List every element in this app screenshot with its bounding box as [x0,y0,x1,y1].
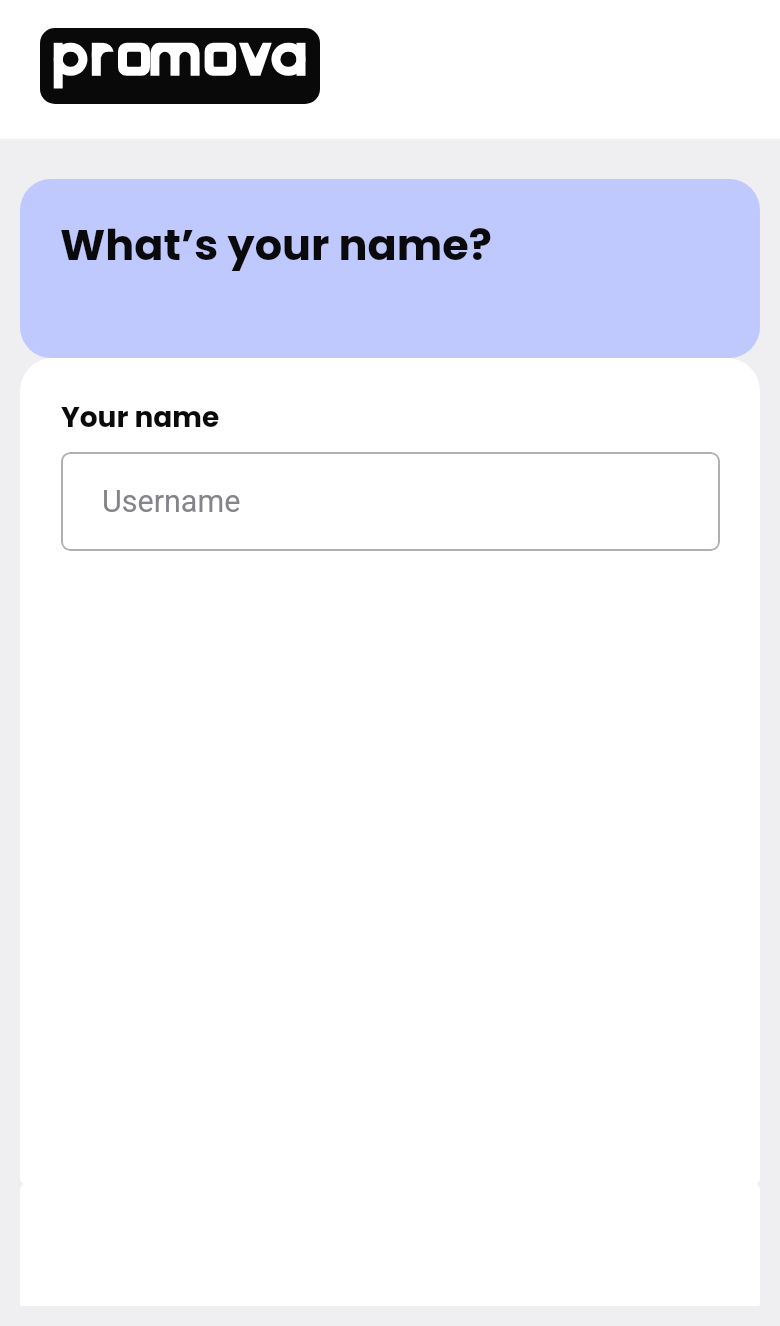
staticText: Username [102,484,241,520]
button[interactable]: Promova [40,28,320,104]
staticText: What’s your name? [60,215,492,275]
staticText: Your name [61,398,220,437]
button[interactable]: Your name text field [61,452,720,551]
